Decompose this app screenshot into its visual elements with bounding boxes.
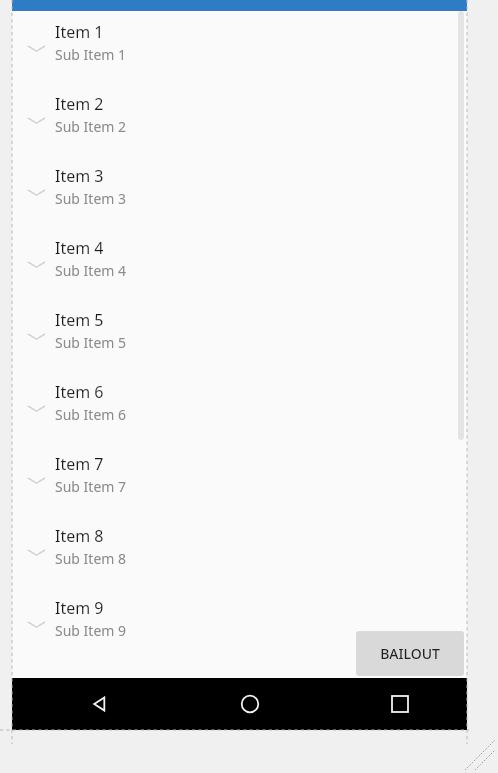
staticText: Item 4 [55, 237, 104, 259]
staticText: Item 1 [55, 21, 104, 43]
button[interactable]: Expand Item 7 [12, 443, 467, 515]
staticText: Sub Item 5 [55, 333, 127, 352]
staticText: Sub Item 6 [55, 405, 127, 424]
other: Expand Item 8 [27, 547, 46, 558]
staticText: Item 8 [55, 525, 104, 547]
staticText: BAILOUT [380, 644, 440, 663]
button[interactable]: Expand Item 2 [12, 83, 467, 155]
other: Expand Item 9 [27, 619, 46, 630]
staticText: Sub Item 9 [55, 621, 127, 640]
button[interactable]: Expand Item 1 [12, 11, 467, 83]
staticText: Item 7 [55, 453, 104, 475]
staticText: Item 3 [55, 165, 104, 187]
other: Expand Item 2 [27, 115, 46, 126]
button[interactable]: Home [217, 678, 283, 730]
staticText: Item 2 [55, 93, 104, 115]
other: Expand Item 4 [27, 259, 46, 270]
staticText: Item 6 [55, 381, 104, 403]
button[interactable]: Expand Item 5 [12, 299, 467, 371]
staticText: Sub Item 8 [55, 549, 127, 568]
staticText: Item 9 [55, 597, 104, 619]
other: Expand Item 6 [27, 403, 46, 414]
other: Expand Item 7 [27, 475, 46, 486]
button[interactable]: Back [67, 678, 133, 730]
staticText: Sub Item 2 [55, 117, 127, 136]
button[interactable]: Expand Item 6 [12, 371, 467, 443]
other: Expand Item 3 [27, 187, 46, 198]
button[interactable]: Recent apps [367, 678, 433, 730]
other: Expand Item 1 [27, 43, 46, 54]
button[interactable]: BAILOUT [356, 631, 464, 676]
button[interactable]: Expand Item 9 [12, 587, 467, 659]
button[interactable]: Expand Item 8 [12, 515, 467, 587]
staticText: Sub Item 1 [55, 45, 127, 64]
staticText: Sub Item 3 [55, 189, 127, 208]
staticText: Sub Item 7 [55, 477, 127, 496]
staticText: Sub Item 4 [55, 261, 127, 280]
other: Expand Item 5 [27, 331, 46, 342]
staticText: Item 5 [55, 309, 104, 331]
button[interactable] [12, 0, 467, 11]
button[interactable]: Expand Item 3 [12, 155, 467, 227]
button[interactable]: Expand Item 4 [12, 227, 467, 299]
